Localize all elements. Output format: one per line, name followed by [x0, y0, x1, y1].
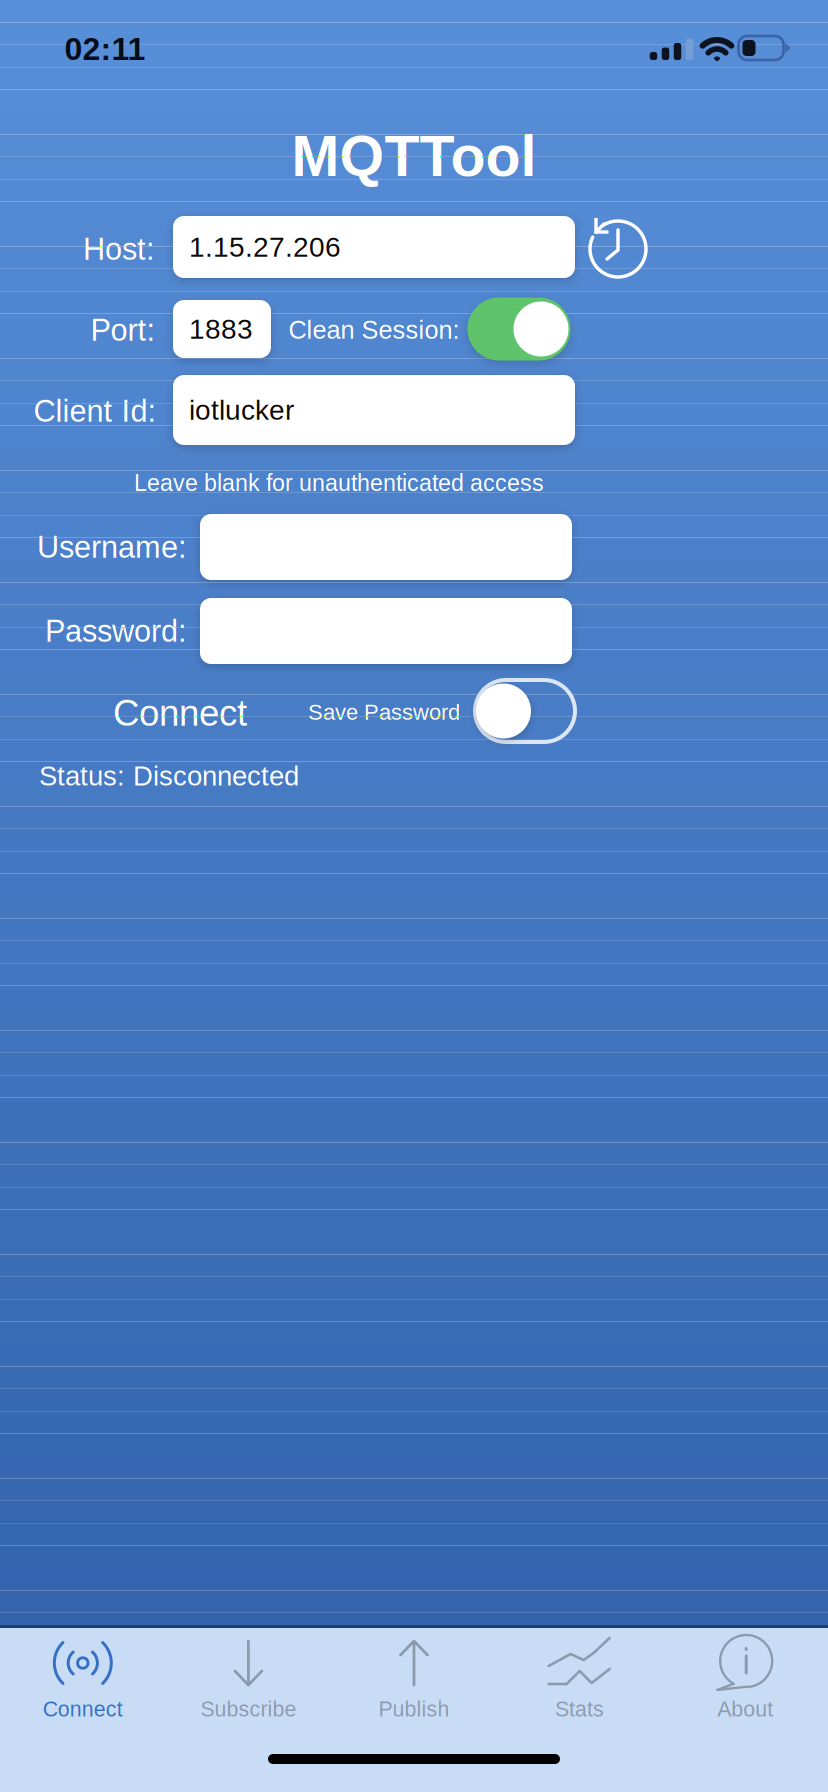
staticText: Save Password: [308, 700, 460, 724]
button[interactable]: Publish: [0, 0, 828, 1792]
staticText: 02:11: [64, 31, 145, 67]
staticText: Status: Disconnected: [39, 761, 299, 791]
staticText: Password:: [45, 614, 187, 648]
button[interactable]: Connect: [0, 0, 828, 1792]
staticText: About: [717, 1697, 773, 1721]
staticText: Leave blank for unauthenticated access: [134, 470, 544, 496]
button[interactable]: Save Password: [475, 680, 575, 742]
button[interactable]: Stats: [0, 0, 828, 1792]
staticText: 1.15.27.206: [189, 231, 341, 263]
staticText: Host:: [83, 232, 155, 266]
staticText: Client Id:: [33, 394, 156, 428]
staticText: Port:: [90, 313, 155, 347]
staticText: Clean Session:: [288, 316, 459, 344]
staticText: Publish: [378, 1697, 449, 1721]
button[interactable]: Subscribe: [0, 0, 828, 1792]
staticText: Username:: [37, 530, 187, 564]
staticText: Stats: [555, 1697, 604, 1721]
button[interactable]: Connect: [95, 682, 265, 744]
staticText: Subscribe: [200, 1697, 296, 1721]
button[interactable]: Clean Session: [467, 297, 570, 360]
button[interactable]: About: [0, 0, 828, 1792]
button[interactable]: History: [585, 207, 651, 279]
staticText: 1883: [189, 313, 253, 345]
staticText: MQTTool: [291, 124, 536, 188]
staticText: Connect: [43, 1697, 123, 1721]
staticText: Connect: [113, 692, 247, 733]
staticText: iotlucker: [189, 394, 294, 426]
